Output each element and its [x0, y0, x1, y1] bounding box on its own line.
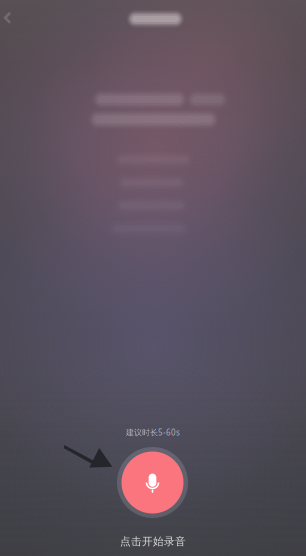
- staticText: 建议时长5-60s: [126, 427, 180, 438]
- staticText: 点击开始录音: [120, 535, 186, 548]
- button[interactable]: 开始录音: [117, 447, 188, 518]
